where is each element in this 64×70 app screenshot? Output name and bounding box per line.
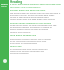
button[interactable]: Menu	[0, 0, 9, 70]
staticText: comes again over the wide green hills ar…	[10, 18, 55, 21]
staticText: exercitation ullamco laboris nisi ut ali…	[10, 38, 51, 41]
staticText: lorem ipsum dolor sit amet consectetur e…	[10, 24, 57, 27]
staticText: Heading	[10, 0, 23, 4]
staticText: secondary line of information	[10, 6, 41, 9]
staticText: occaecat cupidatat	[10, 52, 29, 55]
staticText: another green heading for the section	[10, 22, 52, 25]
staticText: irure dolor in reprehenderit	[10, 42, 38, 45]
staticText: in voluptate velit esse cillum dolore eu	[10, 48, 48, 51]
staticText: dolore magna aliqua ut enim ad minim	[10, 28, 49, 31]
other: Profile	[3, 59, 7, 63]
staticText: a short descriptive sentence about this …	[10, 3, 61, 6]
staticText: third green heading line	[10, 34, 37, 37]
staticText: fugiat nulla pariatur excepteur sint	[10, 50, 45, 53]
staticText: do eiusmod tempor incididunt ut labore e…	[10, 26, 52, 29]
staticText: the quick brown fox jumps over the lazy …	[10, 12, 61, 15]
staticText: fourth one	[10, 45, 22, 48]
staticText: to find a new resting place before night	[10, 16, 49, 19]
staticText: home	[1, 5, 7, 8]
staticText: Menu	[1, 3, 8, 6]
staticText: and then runs far across the open field …	[10, 14, 55, 17]
staticText: another green line about the topic	[10, 9, 46, 12]
staticText: ex ea commodo consequat duis aute	[10, 40, 47, 43]
staticText: veniam quis nostrud	[10, 31, 31, 34]
